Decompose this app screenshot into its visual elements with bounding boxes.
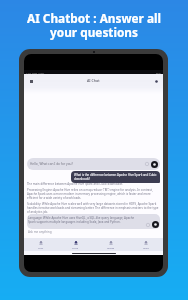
staticText: Chat [38, 246, 44, 249]
staticText: Processing Engine: Apache Hive relies on… [27, 188, 160, 200]
staticText: More [143, 246, 149, 249]
button[interactable]: More [128, 238, 163, 251]
button[interactable]: Write [58, 238, 93, 251]
button[interactable]: Language: While Apache Hive uses HiveQL,… [27, 214, 160, 229]
button[interactable]: Hello, What can I do for you? [27, 158, 160, 170]
staticText: The main difference between Apache Hive … [27, 182, 123, 186]
staticText: AI Chatbot : Answer all your questions [0, 10, 188, 41]
button[interactable]: Chat [24, 238, 58, 251]
staticText: Ask me anything [28, 230, 52, 234]
staticText: What is the difference between Apache Hi… [74, 173, 157, 181]
button[interactable]: Attach [145, 222, 151, 228]
button[interactable]: More options [152, 77, 160, 85]
staticText: 65% [156, 71, 161, 74]
button[interactable]: Send [151, 161, 158, 168]
staticText: 1:45 Wed, 3 Oct [26, 71, 45, 74]
staticText: Write [72, 246, 79, 249]
button[interactable]: Attach [144, 161, 150, 167]
staticText: Language: While Apache Hive uses HiveQL,… [28, 216, 142, 224]
staticText: Scalability: While Apache Hive scales we… [27, 202, 160, 214]
button[interactable]: Image [93, 238, 128, 251]
staticText: Hello, What can I do for you? [30, 162, 73, 166]
staticText: Image [107, 246, 115, 249]
button[interactable]: Send [152, 221, 159, 228]
staticText: AI Chat [87, 78, 100, 83]
button[interactable]: Menu [27, 77, 35, 85]
